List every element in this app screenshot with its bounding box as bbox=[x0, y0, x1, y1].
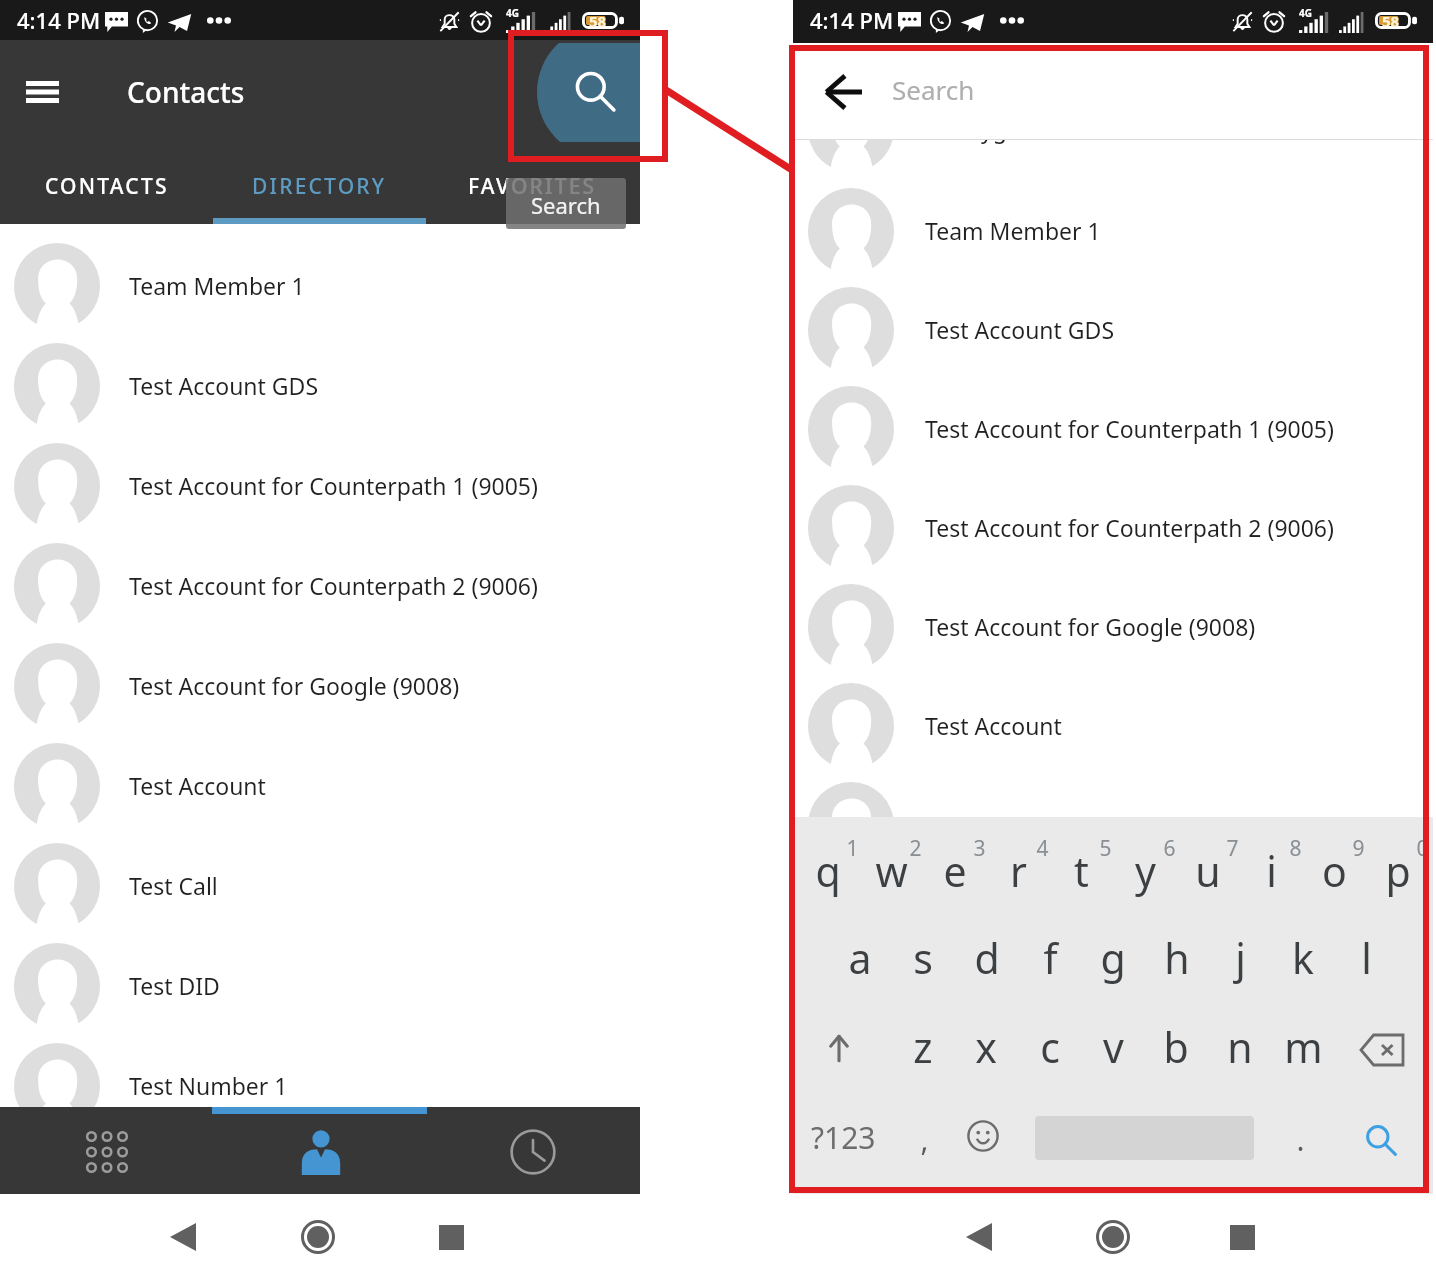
button[interactable]: y bbox=[1114, 838, 1176, 904]
staticText: x bbox=[975, 1019, 997, 1075]
button[interactable]: Test Account GDS bbox=[0, 336, 640, 436]
button[interactable]: Team Member 1 bbox=[0, 236, 640, 336]
button[interactable]: Team Member 1 bbox=[793, 181, 1433, 281]
button[interactable]: c bbox=[1019, 1014, 1081, 1080]
button[interactable]: 3 bbox=[948, 815, 1010, 881]
button[interactable]: o bbox=[1303, 838, 1365, 904]
button[interactable]: Contacts bbox=[285, 1116, 357, 1188]
button[interactable]: Home bbox=[288, 1207, 348, 1267]
staticText: 4:14 PM bbox=[17, 5, 101, 35]
button[interactable]: n bbox=[1209, 1014, 1271, 1080]
staticText: 9 bbox=[1352, 834, 1365, 863]
button[interactable]: Test Number 1 bbox=[0, 1036, 640, 1136]
button[interactable]: Test Account for Google (9008) bbox=[793, 577, 1433, 677]
button[interactable]: z bbox=[892, 1014, 954, 1080]
button[interactable]: e bbox=[924, 838, 986, 904]
button[interactable]: Test Account for Google (9008) bbox=[0, 636, 640, 736]
button[interactable]: Test Account bbox=[0, 736, 640, 836]
staticText: Test Account GDS bbox=[129, 370, 319, 401]
button[interactable]: s bbox=[892, 925, 954, 991]
staticText: Test Account for Google (9008) bbox=[129, 670, 460, 701]
button[interactable]: u bbox=[1177, 838, 1239, 904]
button[interactable]: Back bbox=[153, 1207, 213, 1267]
button[interactable]: f bbox=[1019, 925, 1081, 991]
staticText: Test Call bbox=[129, 870, 218, 901]
button[interactable]: 7 bbox=[1201, 815, 1263, 881]
button[interactable]: i bbox=[1240, 838, 1302, 904]
button[interactable]: Test Call bbox=[0, 836, 640, 936]
button[interactable]: Search bbox=[883, 43, 1413, 135]
button[interactable]: t bbox=[1050, 838, 1112, 904]
button[interactable]: Recent apps bbox=[421, 1207, 481, 1267]
button[interactable]: Search bbox=[1349, 1105, 1411, 1167]
staticText: h bbox=[1164, 930, 1190, 986]
button[interactable]: 9 bbox=[1327, 815, 1389, 881]
button[interactable]: r bbox=[987, 838, 1049, 904]
button[interactable]: ?123 bbox=[805, 1103, 881, 1171]
button[interactable]: x bbox=[955, 1014, 1017, 1080]
button[interactable]: Backspace bbox=[1350, 1013, 1414, 1079]
button[interactable]: . bbox=[1269, 1106, 1331, 1172]
staticText: CONTACTS bbox=[45, 172, 169, 201]
button[interactable]: 8 bbox=[1264, 815, 1326, 881]
staticText: t bbox=[1074, 843, 1089, 899]
button[interactable]: Test DID bbox=[0, 936, 640, 1036]
staticText: Test Account for Counterpath 2 (9006) bbox=[129, 570, 538, 601]
button[interactable]: w bbox=[860, 838, 922, 904]
button[interactable]: Test Account for Counterpath 1 (9005) bbox=[0, 436, 640, 536]
button[interactable]: Test Account for Counterpath 2 (9006) bbox=[793, 478, 1433, 578]
staticText: r bbox=[1010, 843, 1027, 899]
button[interactable]: 4 bbox=[1011, 815, 1073, 881]
button[interactable]: 5 bbox=[1074, 815, 1136, 881]
button[interactable]: l bbox=[1335, 925, 1397, 991]
button[interactable]: FAVORITES bbox=[426, 157, 639, 215]
button[interactable]: Test Account GDS bbox=[793, 280, 1433, 380]
button[interactable]: Back bbox=[805, 61, 869, 125]
button[interactable]: b bbox=[1145, 1014, 1207, 1080]
button[interactable]: Home bbox=[1083, 1207, 1143, 1267]
button[interactable]: a bbox=[829, 925, 891, 991]
button[interactable]: v bbox=[1082, 1014, 1144, 1080]
button[interactable]: DIRECTORY bbox=[213, 157, 426, 215]
button[interactable]: Open navigation menu bbox=[6, 62, 66, 122]
staticText: z bbox=[913, 1019, 933, 1075]
staticText: 0 bbox=[1416, 834, 1429, 863]
staticText: 7 bbox=[1226, 834, 1239, 863]
button[interactable]: Test Account for Counterpath 1 (9005) bbox=[793, 379, 1433, 479]
button[interactable]: 6 bbox=[1138, 815, 1200, 881]
button[interactable]: Shift bbox=[810, 1013, 874, 1079]
button[interactable]: g bbox=[1082, 925, 1144, 991]
button[interactable]: Recents bbox=[497, 1116, 569, 1188]
staticText: i bbox=[1266, 843, 1277, 899]
button[interactable]: j bbox=[1209, 925, 1271, 991]
button[interactable] bbox=[793, 79, 1433, 179]
button[interactable]: p bbox=[1367, 838, 1429, 904]
button[interactable]: , bbox=[893, 1106, 955, 1172]
button[interactable]: Recent apps bbox=[1212, 1207, 1272, 1267]
button[interactable]: 0 bbox=[1391, 815, 1436, 881]
button[interactable]: q bbox=[797, 838, 859, 904]
button[interactable]: m bbox=[1272, 1014, 1334, 1080]
button[interactable]: Dial pad bbox=[71, 1116, 143, 1188]
button[interactable]: k bbox=[1272, 925, 1334, 991]
button[interactable]: 1 bbox=[821, 815, 883, 881]
button[interactable]: Back bbox=[949, 1207, 1009, 1267]
staticText: Test Account for Counterpath 1 (9005) bbox=[925, 413, 1334, 444]
staticText: Test DID bbox=[129, 970, 220, 1001]
button[interactable]: Emoji bbox=[952, 1105, 1014, 1167]
button[interactable]: Test Account bbox=[793, 676, 1433, 776]
staticText: Test Account for Google (9008) bbox=[925, 611, 1256, 642]
staticText: Test Number 1 bbox=[129, 1070, 288, 1101]
staticText: v bbox=[1103, 1019, 1124, 1075]
staticText: g bbox=[1100, 930, 1126, 986]
button[interactable] bbox=[793, 775, 1433, 875]
button[interactable]: Search bbox=[537, 43, 640, 142]
button[interactable]: d bbox=[956, 925, 1018, 991]
staticText: Test Account for Counterpath 1 (9005) bbox=[129, 470, 538, 501]
button[interactable]: Test Account for Counterpath 2 (9006) bbox=[0, 536, 640, 636]
button[interactable]: CONTACTS bbox=[0, 157, 213, 215]
staticText: Test Account GDS bbox=[925, 314, 1115, 345]
button[interactable]: h bbox=[1146, 925, 1208, 991]
button[interactable]: 2 bbox=[884, 815, 946, 881]
